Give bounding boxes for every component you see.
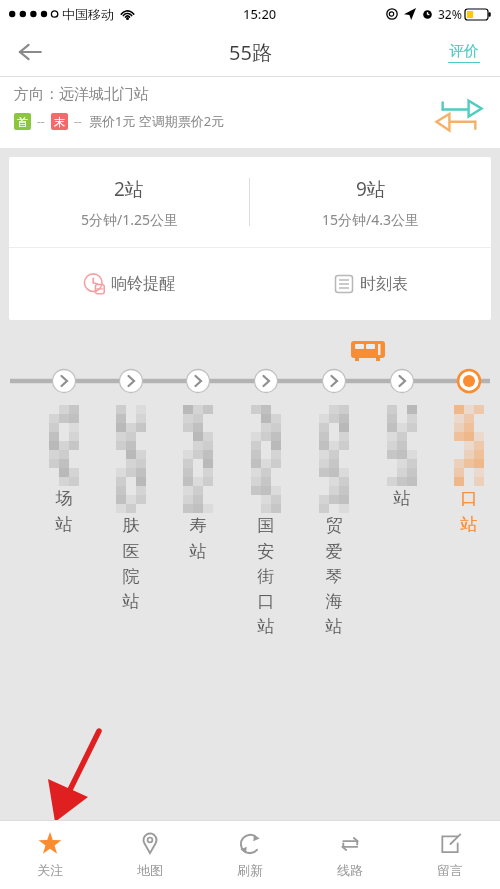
button[interactable]: 响铃提醒 — [9, 248, 250, 320]
button[interactable]: 国 安 街 口 站 — [248, 515, 284, 637]
staticText: 15分钟/4.3公里 — [322, 210, 419, 229]
staticText: -- — [74, 113, 82, 129]
staticText: 9站 — [356, 176, 386, 202]
button[interactable]: 场 站 — [46, 488, 82, 535]
button[interactable]: 贸 爱 琴 海 站 — [316, 515, 352, 637]
staticText: 贸 爱 琴 海 站 — [316, 515, 352, 637]
staticText: 2站 — [114, 176, 144, 202]
staticText: 肤 医 院 站 — [113, 515, 149, 612]
staticText: 留言 — [437, 862, 463, 878]
button[interactable]: 地图 — [100, 821, 200, 889]
staticText: 响铃提醒 — [111, 274, 175, 294]
button[interactable]: 时刻表 — [250, 248, 491, 320]
staticText: 寿 站 — [180, 515, 216, 562]
staticText: 末 — [54, 115, 65, 129]
button[interactable]: Back — [6, 28, 54, 76]
button[interactable]: Switch direction — [432, 86, 486, 140]
staticText: 票价1元 空调期票价2元 — [89, 112, 225, 130]
button[interactable]: 寿 站 — [180, 515, 216, 562]
button[interactable]: 关注 — [0, 821, 100, 889]
staticText: 场 站 — [46, 488, 82, 535]
button[interactable]: 留言 — [400, 821, 500, 889]
staticText: 刷新 — [237, 862, 263, 878]
staticText: 15:20 — [243, 5, 277, 23]
button[interactable]: 肤 医 院 站 — [113, 515, 149, 612]
staticText: 32% — [438, 6, 462, 22]
staticText: 口 站 — [451, 488, 487, 535]
staticText: 方向：远洋城北门站 — [14, 85, 149, 104]
staticText: 关注 — [37, 862, 63, 878]
button[interactable]: 线路 — [300, 821, 400, 889]
button[interactable]: 站 — [384, 488, 420, 509]
button[interactable]: 口 站 — [451, 488, 487, 535]
staticText: 线路 — [337, 862, 363, 878]
button[interactable]: 刷新 — [200, 821, 300, 889]
staticText: 时刻表 — [360, 274, 408, 294]
button[interactable]: 2站 — [9, 157, 249, 247]
staticText: 5分钟/1.25公里 — [81, 210, 178, 229]
staticText: 首 — [17, 115, 28, 129]
staticText: 55路 — [229, 39, 272, 66]
staticText: 站 — [384, 488, 420, 509]
button[interactable]: 评价 — [442, 36, 486, 69]
staticText: -- — [37, 113, 45, 129]
staticText: 国 安 街 口 站 — [248, 515, 284, 637]
staticText: 评价 — [449, 42, 479, 61]
staticText: 地图 — [137, 862, 163, 878]
staticText: 中国移动 — [62, 6, 114, 22]
button[interactable]: 9站 — [250, 157, 491, 247]
